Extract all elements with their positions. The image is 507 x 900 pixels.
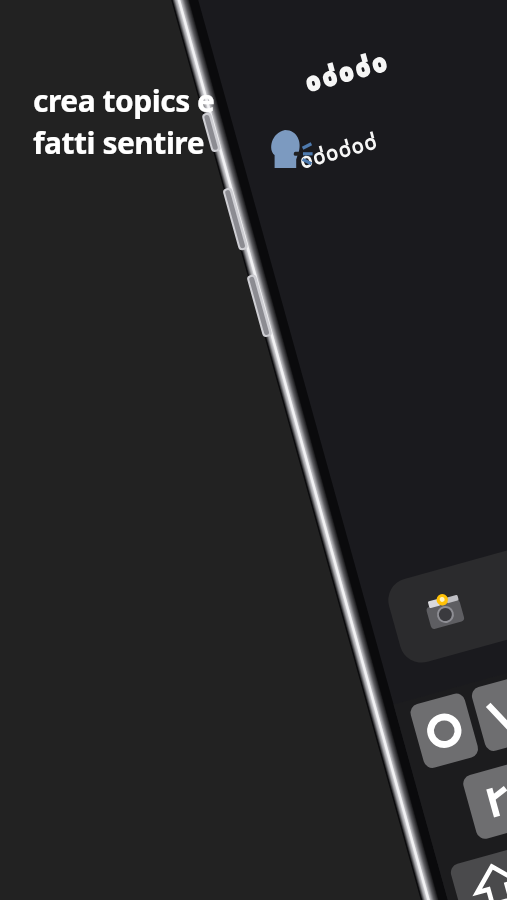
- button[interactable]: Camera attachment: [322, 518, 440, 592]
